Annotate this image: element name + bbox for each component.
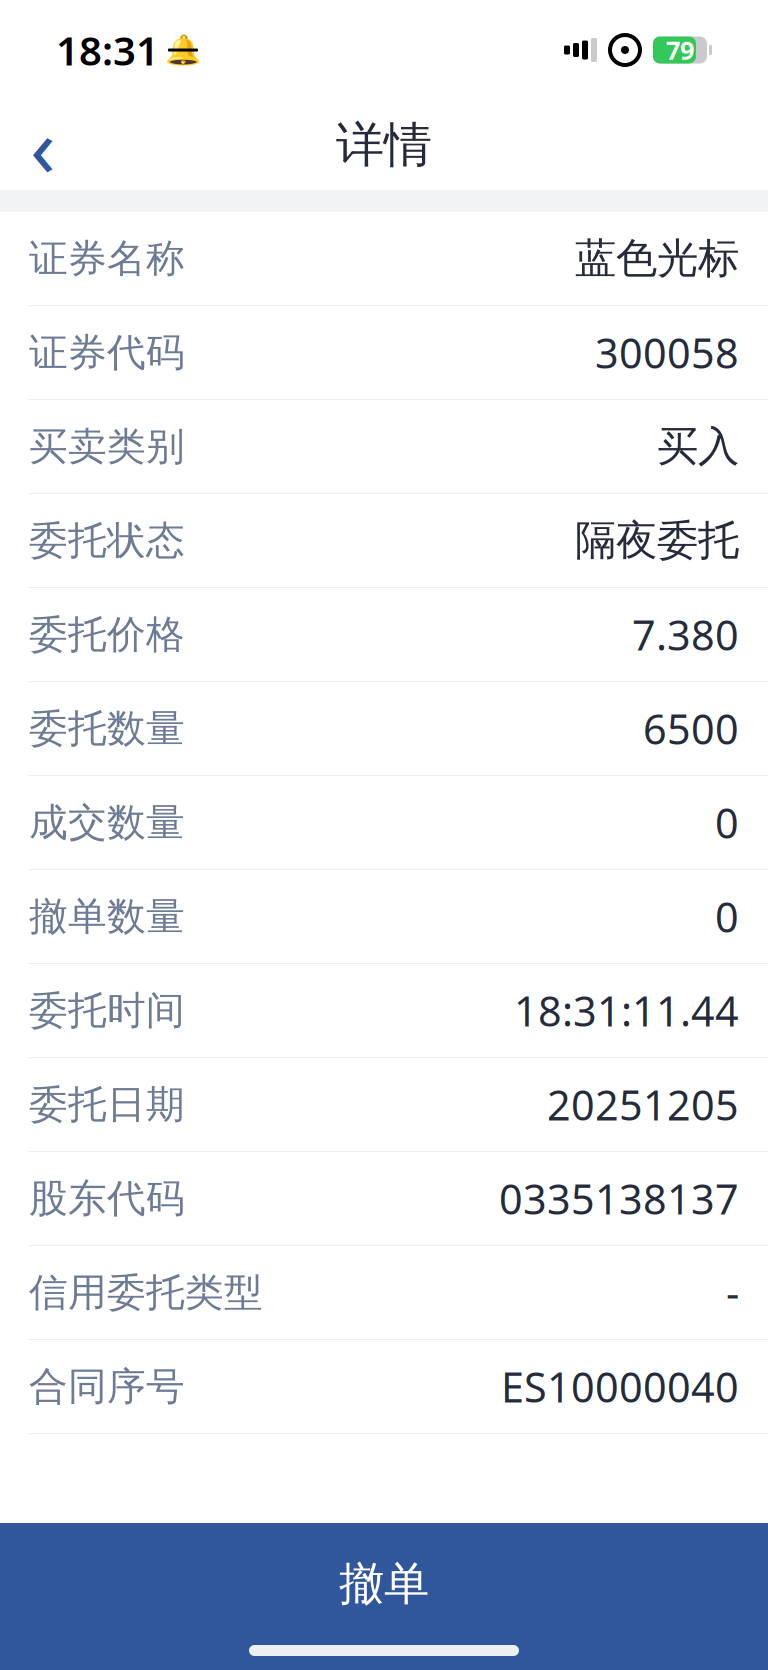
staticText: 0335138137	[499, 1171, 739, 1226]
button[interactable]: 返回	[8, 105, 78, 185]
staticText: 委托价格	[29, 611, 185, 658]
staticText: 证券代码	[29, 329, 185, 376]
staticText: 买入	[657, 421, 739, 472]
staticText: 6500	[643, 701, 739, 756]
staticText: 0	[715, 889, 739, 944]
staticText: ‹	[30, 90, 56, 200]
staticText: 买卖类别	[29, 423, 185, 470]
staticText: ES10000040	[501, 1359, 739, 1414]
staticText: 委托数量	[29, 705, 185, 752]
staticText: 详情	[336, 115, 432, 174]
staticText: 300058	[595, 325, 739, 380]
staticText: 18:31	[56, 23, 159, 76]
staticText: 🔔	[164, 33, 201, 67]
staticText: 7.380	[632, 607, 739, 662]
staticText: 蓝色光标	[575, 233, 739, 284]
staticText: 0	[715, 795, 739, 850]
staticText: 成交数量	[29, 799, 185, 846]
staticText: 撤单数量	[29, 893, 185, 940]
staticText: 委托日期	[29, 1081, 185, 1128]
staticText: 20251205	[547, 1077, 739, 1132]
staticText: 18:31:11.44	[514, 983, 739, 1038]
staticText: -	[726, 1265, 739, 1320]
staticText: 撤单	[339, 1556, 429, 1612]
staticText: 79	[666, 33, 694, 67]
staticText: 合同序号	[29, 1363, 185, 1410]
staticText: 信用委托类型	[29, 1269, 263, 1316]
staticText: 股东代码	[29, 1175, 185, 1222]
button[interactable]: 撤单	[0, 1523, 768, 1670]
staticText: 委托时间	[29, 987, 185, 1034]
staticText: 委托状态	[29, 517, 185, 564]
staticText: 证券名称	[29, 235, 185, 282]
staticText: 隔夜委托	[575, 515, 739, 566]
